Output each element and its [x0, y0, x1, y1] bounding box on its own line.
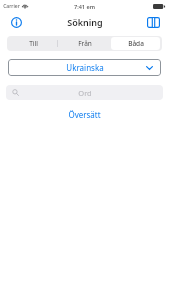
button[interactable]: Till	[9, 37, 58, 50]
button[interactable]: Information	[7, 13, 25, 31]
staticText: Sökning	[67, 16, 103, 28]
button[interactable]: Från	[60, 37, 109, 50]
staticText: Från	[78, 39, 92, 48]
button[interactable]: Ukrainska	[8, 59, 161, 76]
staticText: Ukrainska	[66, 62, 104, 73]
staticText: Ord	[78, 88, 92, 98]
button[interactable]: Ord	[6, 85, 163, 100]
button[interactable]: Översätt	[58, 107, 111, 122]
button[interactable]: Båda	[111, 37, 160, 50]
staticText: 7:41 em	[74, 3, 95, 10]
button[interactable]: Ordbok	[144, 13, 162, 31]
staticText: Båda	[128, 39, 144, 48]
staticText: Carrier	[3, 3, 20, 10]
staticText: Till	[29, 39, 38, 48]
staticText: Översätt	[68, 109, 101, 120]
